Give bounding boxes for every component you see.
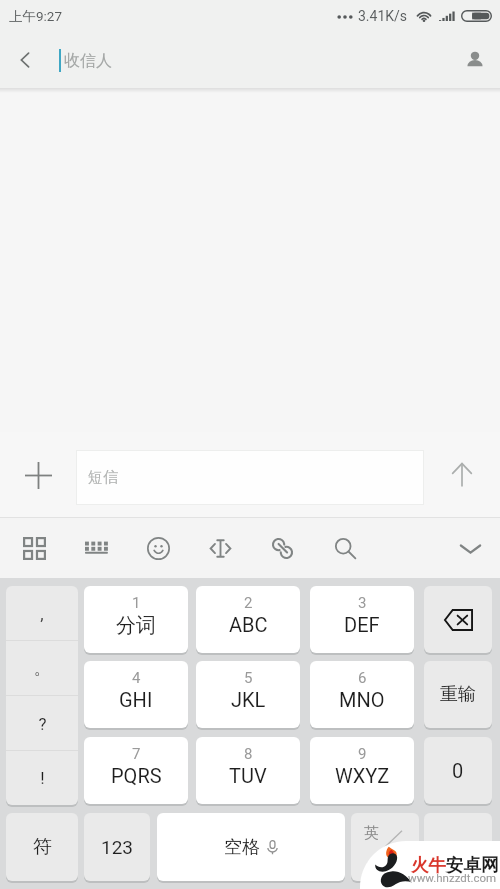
staticText: 短信 (88, 468, 118, 487)
staticText: PQRS (111, 764, 162, 787)
button[interactable]: 英 (351, 813, 419, 881)
staticText: 安卓网 (446, 854, 499, 876)
staticText: ? (38, 714, 47, 734)
staticText: 9 (358, 745, 367, 763)
staticText: TUV (229, 764, 267, 787)
other: Enter (424, 813, 492, 881)
staticText: www.hnzzdt.com (408, 871, 497, 884)
button[interactable]: Clipboard (258, 524, 306, 572)
button[interactable]: 123 (84, 813, 150, 881)
staticText: ABC (229, 613, 268, 636)
staticText: 8 (244, 745, 253, 763)
staticText: 3.41K/s (358, 8, 408, 24)
button[interactable]: Numeric keypad (72, 524, 120, 572)
button[interactable]: 短信 (76, 450, 424, 505)
button[interactable]: Back (0, 35, 50, 85)
button[interactable]: 空格 (157, 813, 345, 881)
button[interactable]: Emoji (134, 524, 182, 572)
staticText: 收信人 (64, 51, 112, 71)
staticText: 符 (33, 835, 52, 859)
button[interactable] (424, 586, 492, 653)
staticText: 空格 (224, 836, 260, 859)
staticText: 0 (452, 759, 464, 782)
button[interactable]: 0 (424, 737, 492, 804)
staticText: 7 (132, 745, 141, 763)
button[interactable]: Choose contact (450, 35, 500, 85)
staticText: WXYZ (335, 764, 390, 787)
staticText: 1 (132, 594, 141, 612)
staticText: 4 (132, 669, 141, 687)
staticText: MNO (339, 688, 385, 711)
button[interactable]: Keyboard layouts (10, 524, 58, 572)
staticText: , (40, 604, 44, 624)
staticText: 分词 (116, 613, 156, 638)
button[interactable]: 3 (310, 586, 414, 653)
button[interactable]: 6 (310, 661, 414, 728)
staticText: GHI (119, 688, 153, 711)
staticText: 火牛 (411, 854, 446, 876)
button[interactable]: , (6, 586, 78, 805)
staticText: 重输 (440, 683, 476, 706)
staticText: JKL (231, 688, 266, 711)
button[interactable]: 2 (196, 586, 300, 653)
button[interactable]: 8 (196, 737, 300, 804)
button[interactable]: Search (321, 524, 369, 572)
button[interactable]: 7 (84, 737, 188, 804)
staticText: 。 (34, 658, 51, 679)
button[interactable]: Hide keyboard (446, 524, 494, 572)
button[interactable]: Add attachment (14, 451, 62, 499)
button[interactable]: Move cursor (196, 524, 244, 572)
button[interactable]: 5 (196, 661, 300, 728)
button[interactable]: Enter (424, 813, 492, 881)
staticText: 6 (358, 669, 367, 687)
button[interactable]: Send (438, 451, 486, 499)
staticText: 上午9:27 (9, 8, 63, 25)
button[interactable]: 1 (84, 586, 188, 653)
staticText: 英 (364, 824, 379, 843)
staticText: 5 (244, 669, 253, 687)
staticText: 123 (101, 836, 134, 858)
button[interactable]: 重输 (424, 661, 492, 728)
button[interactable]: 4 (84, 661, 188, 728)
staticText: DEF (344, 613, 380, 636)
staticText: 中 (387, 851, 402, 870)
button[interactable]: 符 (6, 813, 78, 881)
staticText: ! (40, 768, 45, 788)
staticText: 2 (244, 594, 253, 612)
staticText: 3 (358, 594, 367, 612)
button[interactable]: 9 (310, 737, 414, 804)
